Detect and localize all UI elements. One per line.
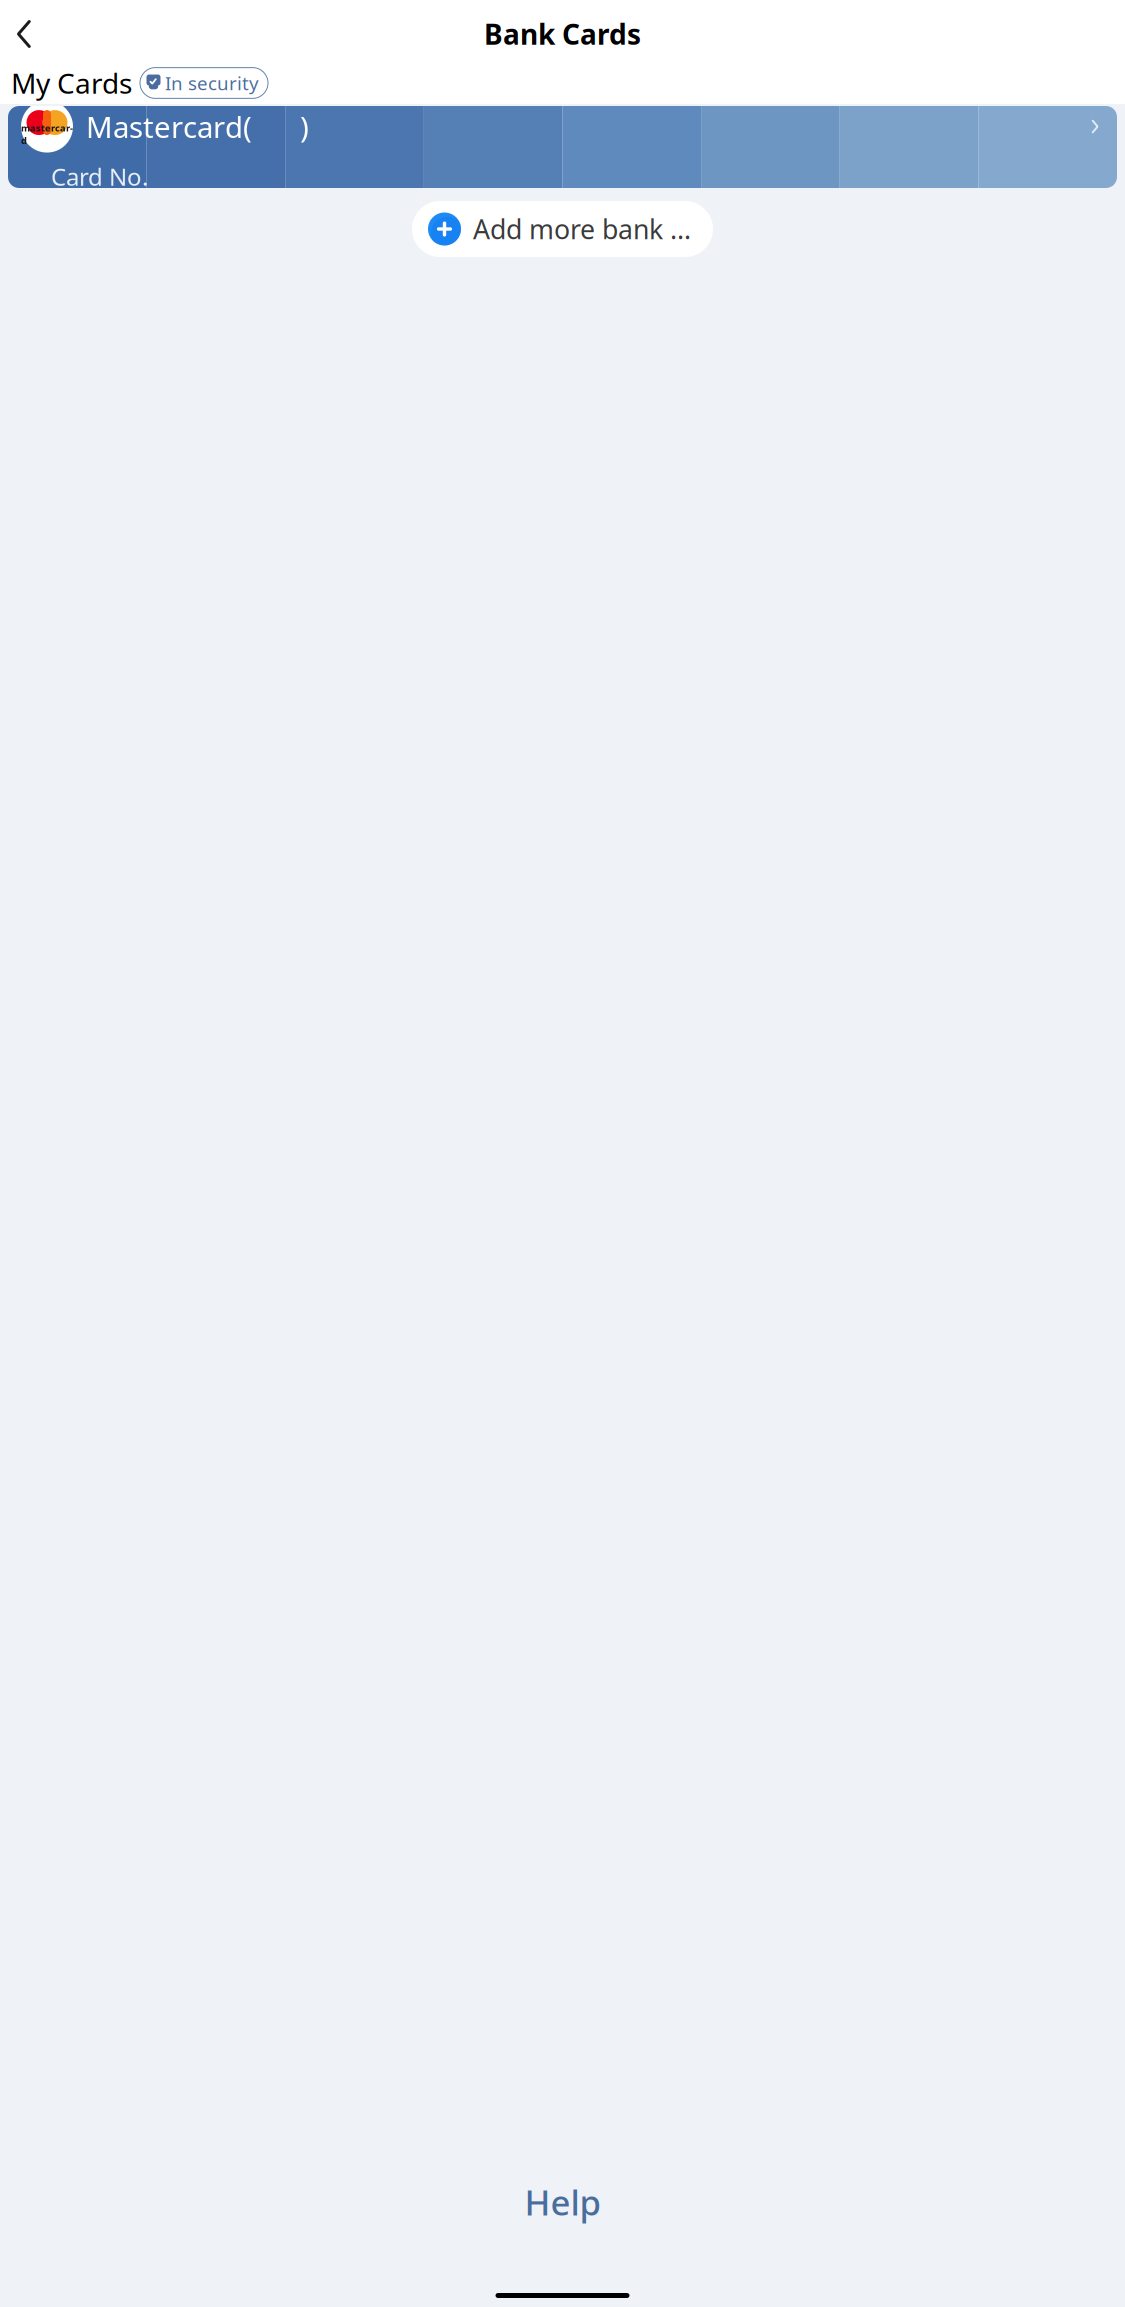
button[interactable]: Back (0, 10, 48, 58)
staticText: In security (165, 71, 259, 95)
button[interactable]: Add more bank … (412, 201, 713, 257)
button[interactable]: mastercard (8, 106, 1117, 188)
button[interactable]: Help (500, 2171, 624, 2233)
staticText: Card No. (51, 161, 148, 192)
staticText: Help (524, 2179, 600, 2225)
staticText: Mastercard( ) (86, 107, 309, 146)
staticText: Bank Cards (484, 15, 641, 53)
staticText: My Cards (11, 64, 132, 102)
staticText: mastercard (21, 122, 73, 147)
staticText: Add more bank … (473, 211, 691, 247)
